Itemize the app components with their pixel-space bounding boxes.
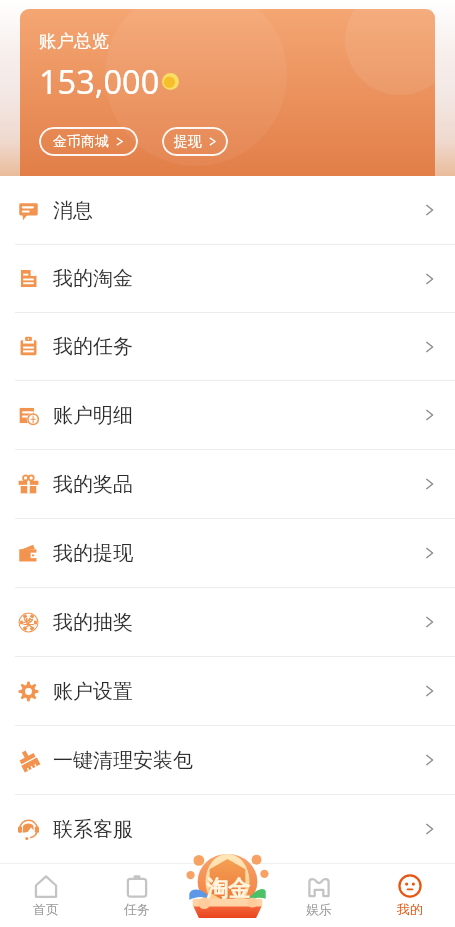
staticText: 我的任务 xyxy=(53,334,133,359)
staticText: 奖 xyxy=(23,616,34,630)
staticText: 账户明细 xyxy=(53,403,133,428)
staticText: 一键清理安装包 xyxy=(53,748,193,773)
staticText: 首页 xyxy=(33,901,59,917)
staticText: 我的 xyxy=(397,901,423,917)
button[interactable]: 娱乐 xyxy=(273,863,364,927)
button[interactable]: 我的奖品 xyxy=(0,450,455,518)
staticText: 消息 xyxy=(53,198,93,223)
button[interactable]: 账户明细 xyxy=(0,381,455,449)
staticText: 我的淘金 xyxy=(53,266,133,291)
staticText: 任务 xyxy=(124,901,150,917)
staticText: 账户设置 xyxy=(53,679,133,704)
button[interactable]: 金币商城 xyxy=(39,127,138,156)
staticText: 153,000 xyxy=(39,59,160,103)
button[interactable]: 任务 xyxy=(91,863,182,927)
button[interactable]: 首页 xyxy=(0,863,91,927)
staticText: 我的奖品 xyxy=(53,472,133,497)
button[interactable]: 账户设置 xyxy=(0,657,455,725)
button[interactable]: 提现 xyxy=(162,127,228,156)
staticText: 联系客服 xyxy=(53,817,133,842)
staticText: 娱乐 xyxy=(306,901,332,917)
button[interactable]: 我的任务 xyxy=(0,313,455,380)
button[interactable]: 一键清理安装包 xyxy=(0,726,455,794)
button[interactable]: 我的 xyxy=(364,863,455,927)
staticText: 金币商城 xyxy=(53,133,109,151)
button[interactable]: 我的提现 xyxy=(0,519,455,587)
staticText: 我的提现 xyxy=(53,541,133,566)
button[interactable]: 奖 xyxy=(0,588,455,656)
button[interactable]: 我的淘金 xyxy=(0,245,455,312)
button[interactable]: 联系客服 xyxy=(0,795,455,863)
staticText: 我的抽奖 xyxy=(53,610,133,635)
staticText: 提现 xyxy=(174,133,202,151)
staticText: 淘金 xyxy=(206,875,250,903)
button[interactable]: 淘金 xyxy=(186,854,269,918)
staticText: 账户总览 xyxy=(39,30,109,52)
button[interactable]: 消息 xyxy=(0,176,455,244)
